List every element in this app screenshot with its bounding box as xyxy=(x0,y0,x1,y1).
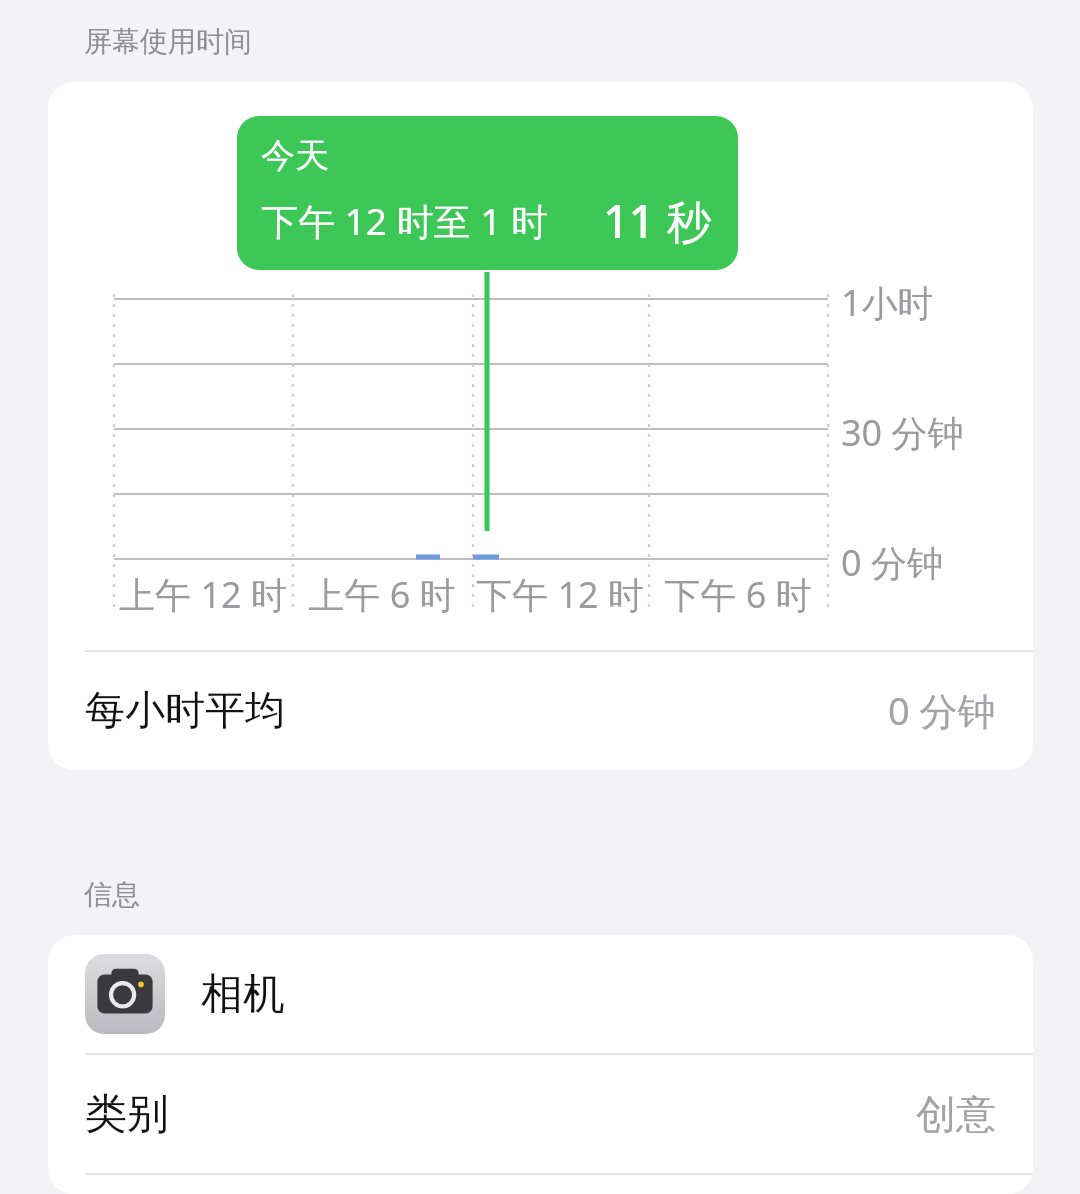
staticText: 下午 6 时 xyxy=(628,570,848,619)
staticText: 今天 xyxy=(261,134,329,177)
staticText: 相机 xyxy=(201,968,285,1021)
button[interactable]: 每小时平均 xyxy=(48,650,1033,770)
staticText: 信息 xyxy=(84,877,140,912)
staticText: 类别 xyxy=(85,1088,169,1141)
staticText: 创意 xyxy=(916,1089,996,1139)
staticText: 30 分钟 xyxy=(841,408,964,457)
staticText: 上午 6 时 xyxy=(272,570,492,619)
other: 相机 xyxy=(85,954,165,1034)
staticText: 上午 12 时 xyxy=(93,570,313,619)
staticText: 11 秒 xyxy=(603,190,712,251)
staticText: 下午 12 时至 1 时 xyxy=(261,195,548,246)
staticText: 每小时平均 xyxy=(85,685,285,735)
staticText: 下午 12 时 xyxy=(450,570,670,619)
staticText: 0 分钟 xyxy=(888,684,996,736)
staticText: 0 分钟 xyxy=(841,538,943,587)
button[interactable]: 相机 xyxy=(48,935,1033,1053)
staticText: 屏幕使用时间 xyxy=(84,24,252,59)
button[interactable]: 类别 xyxy=(48,1055,1033,1173)
staticText: 1小时 xyxy=(841,278,934,327)
button[interactable]: 今天 xyxy=(237,116,738,270)
